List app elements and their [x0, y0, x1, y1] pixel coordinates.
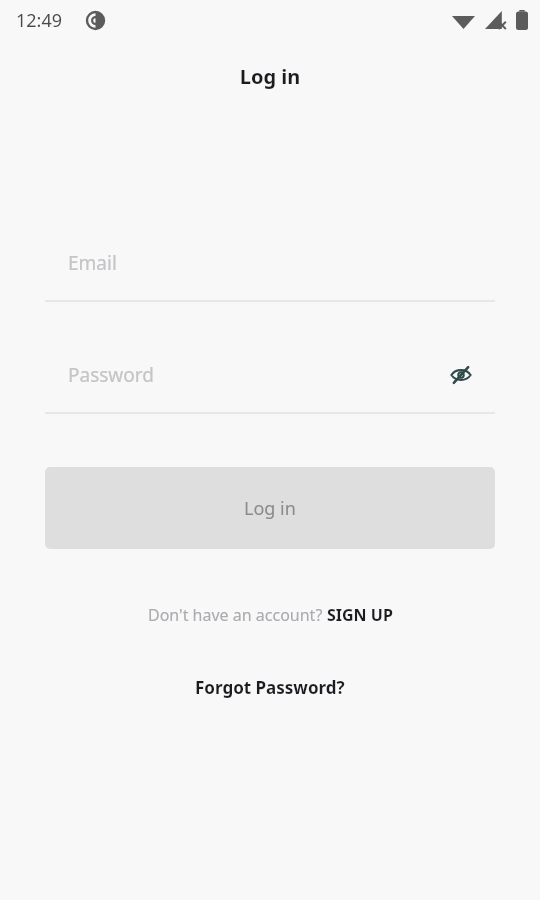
- staticText: Log in: [244, 496, 296, 521]
- button[interactable]: Show password: [442, 356, 480, 394]
- staticText: Password: [68, 362, 154, 388]
- staticText: SIGN UP: [327, 604, 393, 626]
- staticText: Email: [68, 250, 117, 276]
- staticText: Don't have an account?: [148, 604, 327, 626]
- button[interactable]: Log in: [45, 467, 495, 549]
- staticText: Log in: [0, 63, 540, 90]
- staticText: 12:49: [16, 8, 63, 33]
- button[interactable]: SIGN UP: [327, 604, 393, 626]
- button[interactable]: Password: [45, 342, 495, 414]
- button[interactable]: Forgot Password?: [187, 672, 353, 703]
- staticText: Forgot Password?: [195, 676, 345, 699]
- button[interactable]: Email: [45, 230, 495, 302]
